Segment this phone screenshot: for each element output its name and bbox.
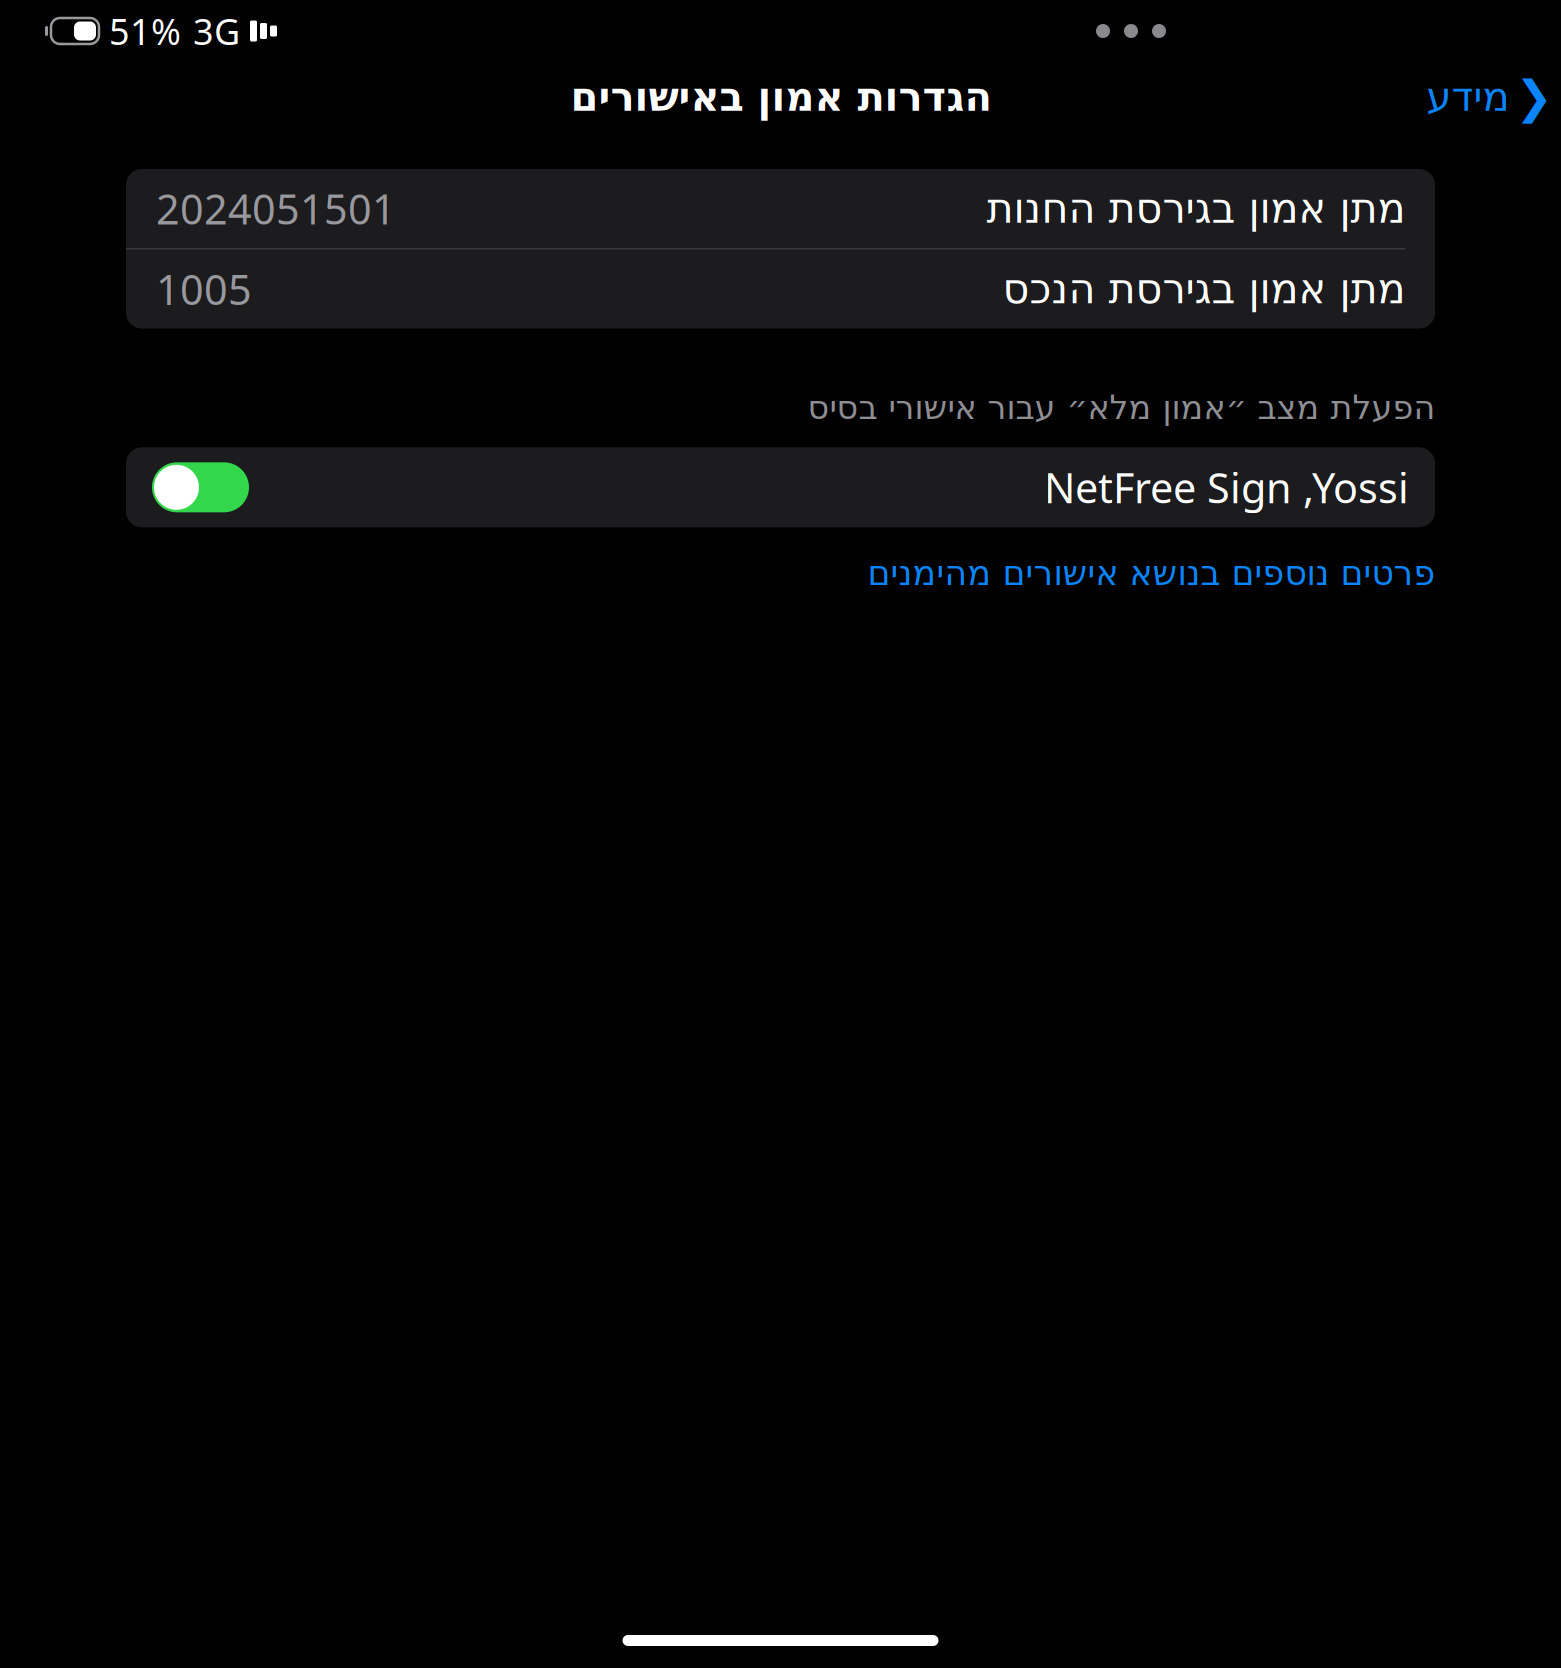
staticText: 51%: [109, 7, 181, 55]
button[interactable]: NetFree Sign ,Yossi: [126, 447, 1435, 527]
staticText: ❯: [1515, 71, 1553, 123]
staticText: פרטים נוספים בנושא אישורים מהימנים: [867, 553, 1435, 593]
staticText: 3G: [193, 7, 240, 55]
staticText: מתן אמון בגירסת הנכס: [1002, 265, 1405, 312]
staticText: 2024051501: [156, 181, 396, 236]
staticText: 1005: [156, 262, 252, 316]
staticText: מתן אמון בגירסת החנות: [986, 185, 1405, 232]
button[interactable]: מידע: [1426, 61, 1561, 133]
staticText: NetFree Sign ,Yossi: [1044, 460, 1409, 515]
button[interactable]: פרטים נוספים בנושא אישורים מהימנים: [867, 547, 1435, 599]
staticText: הגדרות אמון באישורים: [570, 74, 991, 120]
staticText: הפעלת מצב ״אמון מלא״ עבור אישורי בסיס: [807, 388, 1435, 426]
staticText: מידע: [1426, 74, 1509, 120]
